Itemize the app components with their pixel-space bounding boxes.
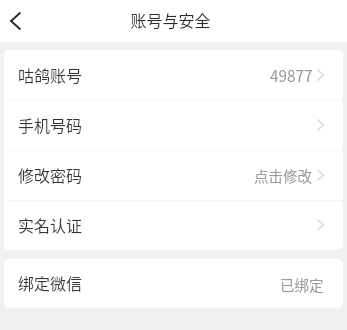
button[interactable]: 咕鸽账号 [4,50,343,100]
staticText: 咕鸽账号 [18,63,83,86]
staticText: 账号与安全 [130,8,211,31]
staticText: 手机号码 [18,113,83,136]
button[interactable]: 修改密码 [4,150,343,200]
staticText: 已绑定 [280,274,324,295]
staticText: 点击修改 [254,165,312,186]
button[interactable]: 实名认证 [4,200,343,250]
staticText: 实名认证 [18,213,83,236]
staticText: 49877 [270,64,313,86]
staticText: 绑定微信 [18,271,83,294]
button[interactable]: Back [0,0,42,42]
button[interactable]: 绑定微信 [4,259,343,308]
staticText: 修改密码 [18,163,83,186]
button[interactable]: 手机号码 [4,100,343,150]
